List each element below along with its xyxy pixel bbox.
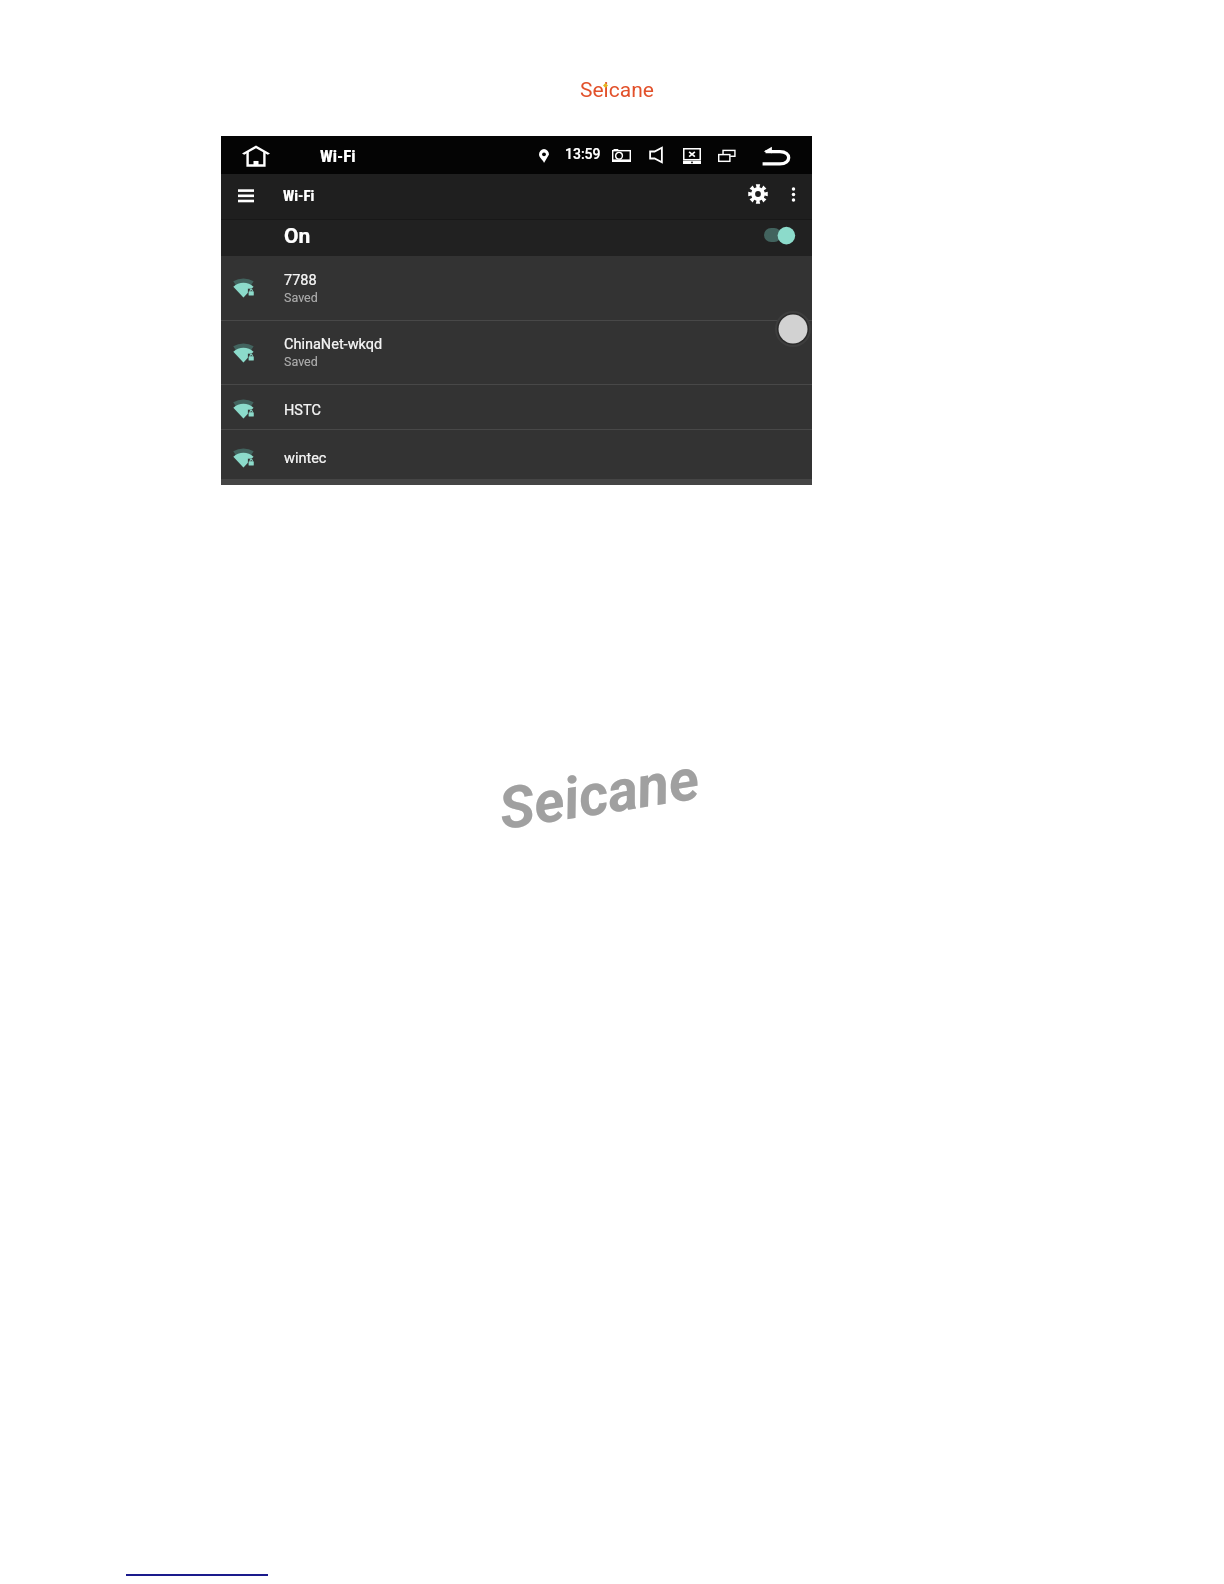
staticText: ChinaNet-wkqd: [284, 336, 383, 353]
staticText: Seicane: [580, 78, 654, 103]
button[interactable]: Home: [242, 145, 270, 166]
button[interactable]: Volume: [649, 147, 663, 163]
button[interactable]: Floating menu: [775, 311, 811, 347]
staticText: Wi-Fi: [283, 187, 315, 205]
button[interactable]: Settings: [748, 184, 768, 204]
button[interactable]: Back: [762, 145, 791, 167]
staticText: Seicane: [494, 745, 704, 843]
button[interactable]: ChinaNet-wkqd: [221, 321, 812, 384]
staticText: Wi-Fi: [320, 146, 356, 166]
staticText: HSTC: [284, 402, 321, 419]
button[interactable]: Screen off: [683, 148, 701, 164]
staticText: wintec: [284, 450, 327, 467]
button[interactable]: Wi-Fi on/off: [764, 226, 796, 246]
button[interactable]: Screenshot: [612, 149, 631, 162]
button[interactable]: HSTC: [221, 385, 812, 429]
staticText: 7788: [284, 272, 317, 289]
staticText: Saved: [284, 290, 318, 305]
staticText: Saved: [284, 354, 318, 369]
staticText: 13:59: [565, 146, 601, 162]
button[interactable]: On: [221, 220, 812, 256]
button[interactable]: 7788: [221, 256, 812, 320]
button[interactable]: Menu: [238, 188, 254, 201]
button[interactable]: Recents: [718, 149, 736, 163]
button[interactable]: More options: [789, 187, 798, 202]
button[interactable]: wintec: [221, 430, 812, 479]
staticText: On: [284, 224, 311, 249]
